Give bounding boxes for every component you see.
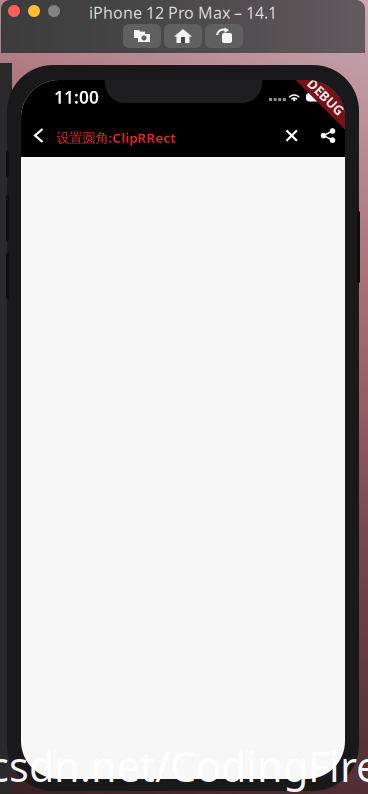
button[interactable]: Close window <box>8 5 20 17</box>
button[interactable]: Back <box>21 118 57 157</box>
button[interactable]: Share <box>308 118 348 157</box>
button[interactable]: Take screenshot <box>123 24 161 48</box>
button[interactable]: Zoom window <box>48 5 60 17</box>
button[interactable]: Home <box>164 24 202 48</box>
button[interactable]: Rotate <box>205 24 243 48</box>
button[interactable]: Close <box>272 118 312 157</box>
staticText: iPhone 12 Pro Max – 14.1 <box>89 2 277 23</box>
staticText: csdn.net/CodingFire <box>0 739 368 793</box>
button[interactable]: Minimize window <box>28 5 40 17</box>
staticText: DEBUG <box>303 88 349 106</box>
staticText: 设置圆角:ClipRRect <box>56 129 175 146</box>
staticText: 11:00 <box>54 85 99 108</box>
